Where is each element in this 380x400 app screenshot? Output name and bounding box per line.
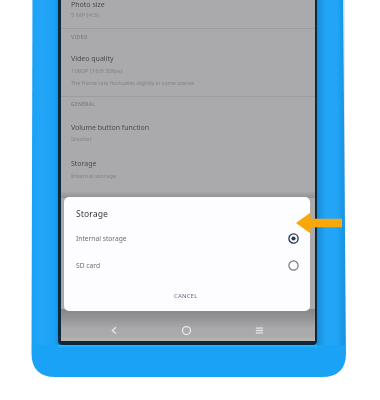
staticText: Internal storage bbox=[76, 234, 127, 243]
staticText: Volume button function bbox=[71, 123, 150, 133]
button[interactable]: Recent apps bbox=[246, 321, 273, 339]
staticText: Shutter bbox=[71, 135, 92, 143]
staticText: GENERAL bbox=[71, 101, 96, 108]
staticText: SD card bbox=[76, 261, 100, 270]
button[interactable]: Home bbox=[173, 321, 200, 339]
button[interactable] bbox=[61, 153, 315, 184]
button[interactable] bbox=[61, 117, 315, 148]
button[interactable] bbox=[61, 50, 315, 95]
staticText: Storage bbox=[71, 159, 97, 169]
staticText: Photo size bbox=[71, 0, 105, 10]
button[interactable] bbox=[61, 0, 315, 27]
button[interactable]: CANCEL bbox=[164, 288, 208, 303]
staticText: CANCEL bbox=[174, 292, 198, 300]
button[interactable]: Internal storage bbox=[64, 226, 310, 250]
staticText: The frame rate fluctuates slightly in so… bbox=[71, 79, 195, 86]
staticText: Video quality bbox=[71, 54, 114, 64]
staticText: Internal storage bbox=[71, 172, 117, 180]
button[interactable]: SD card bbox=[64, 253, 310, 277]
button[interactable]: Back bbox=[100, 321, 127, 339]
staticText: 5 MP (4:3) bbox=[71, 11, 99, 19]
staticText: VIDEO bbox=[71, 34, 88, 41]
staticText: 1080P (16:9 30fps) bbox=[71, 67, 123, 75]
staticText: Storage bbox=[76, 208, 108, 220]
